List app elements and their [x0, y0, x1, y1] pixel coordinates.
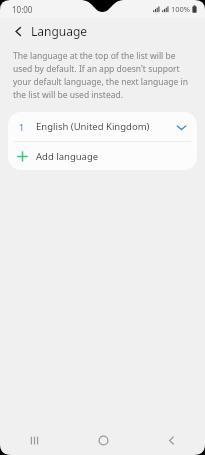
staticText: English (United Kingdom) [36, 120, 150, 133]
staticText: Add language [36, 150, 99, 163]
staticText: The language at the top of the list will… [13, 50, 193, 101]
button[interactable]: Recent apps [0, 425, 69, 455]
button[interactable]: Back [8, 21, 28, 41]
button[interactable]: Back [137, 425, 205, 455]
staticText: 10:00 [12, 4, 33, 15]
staticText: 1 [19, 121, 25, 133]
other: Expand [173, 119, 189, 135]
staticText: Language [31, 23, 88, 39]
button[interactable]: Home [69, 425, 137, 455]
staticText: 100% [171, 4, 191, 14]
button[interactable]: Add language [8, 142, 197, 170]
button[interactable]: 1 [8, 112, 197, 141]
